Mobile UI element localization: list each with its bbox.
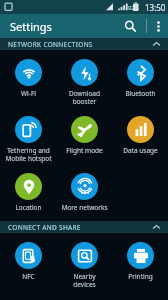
staticText: NFC — [22, 272, 35, 281]
button[interactable]: Bluetooth — [112, 54, 168, 103]
button[interactable]: Nearby devices — [56, 237, 112, 294]
button[interactable]: Data usage — [112, 111, 168, 160]
button[interactable]: More networks — [56, 168, 112, 217]
staticText: Tethering and Mobile hotspot — [5, 146, 52, 163]
staticText: Nearby devices — [73, 272, 96, 289]
staticText: Location — [15, 203, 42, 212]
button[interactable]: CONNECT AND SHARE — [0, 221, 168, 233]
button[interactable]: Download booster — [56, 54, 112, 111]
staticText: 92% — [128, 4, 139, 11]
button[interactable]: NFC — [0, 237, 56, 286]
staticText: Flight mode — [66, 146, 103, 155]
staticText: CONNECT AND SHARE — [8, 223, 81, 232]
button[interactable]: Search — [119, 15, 141, 37]
staticText: Data usage — [123, 146, 158, 155]
button[interactable]: Flight mode — [56, 111, 112, 160]
staticText: Printing — [128, 272, 153, 281]
staticText: More networks — [61, 203, 108, 212]
staticText: Bluetooth — [125, 89, 156, 98]
staticText: 13:50 — [145, 2, 166, 13]
button[interactable]: Location — [0, 168, 56, 217]
button[interactable]: Printing — [112, 237, 168, 286]
staticText: NETWORK CONNECTIONS — [8, 40, 93, 49]
staticText: Wi-Fi — [21, 89, 36, 98]
staticText: Settings — [10, 19, 52, 34]
staticText: Download booster — [69, 89, 100, 106]
button[interactable]: Wi-Fi — [0, 54, 56, 103]
button[interactable]: NETWORK CONNECTIONS — [0, 38, 168, 50]
button[interactable]: More options — [148, 14, 168, 38]
button[interactable]: Tethering and Mobile hotspot — [0, 111, 56, 168]
